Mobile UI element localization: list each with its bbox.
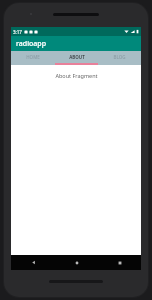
button[interactable]: Home	[55, 255, 98, 270]
button[interactable]: ABOUT	[55, 51, 98, 63]
staticText: 3:17	[13, 29, 22, 35]
staticText: HOME	[26, 54, 40, 60]
staticText: About Fragment	[55, 72, 98, 79]
button[interactable]: Recents	[98, 255, 141, 270]
staticText: radioapp	[16, 39, 47, 49]
button[interactable]: Back	[11, 255, 55, 270]
staticText: BLOG	[113, 54, 126, 60]
button[interactable]: HOME	[11, 51, 55, 63]
button[interactable]: BLOG	[98, 51, 141, 63]
staticText: ABOUT	[69, 54, 85, 60]
